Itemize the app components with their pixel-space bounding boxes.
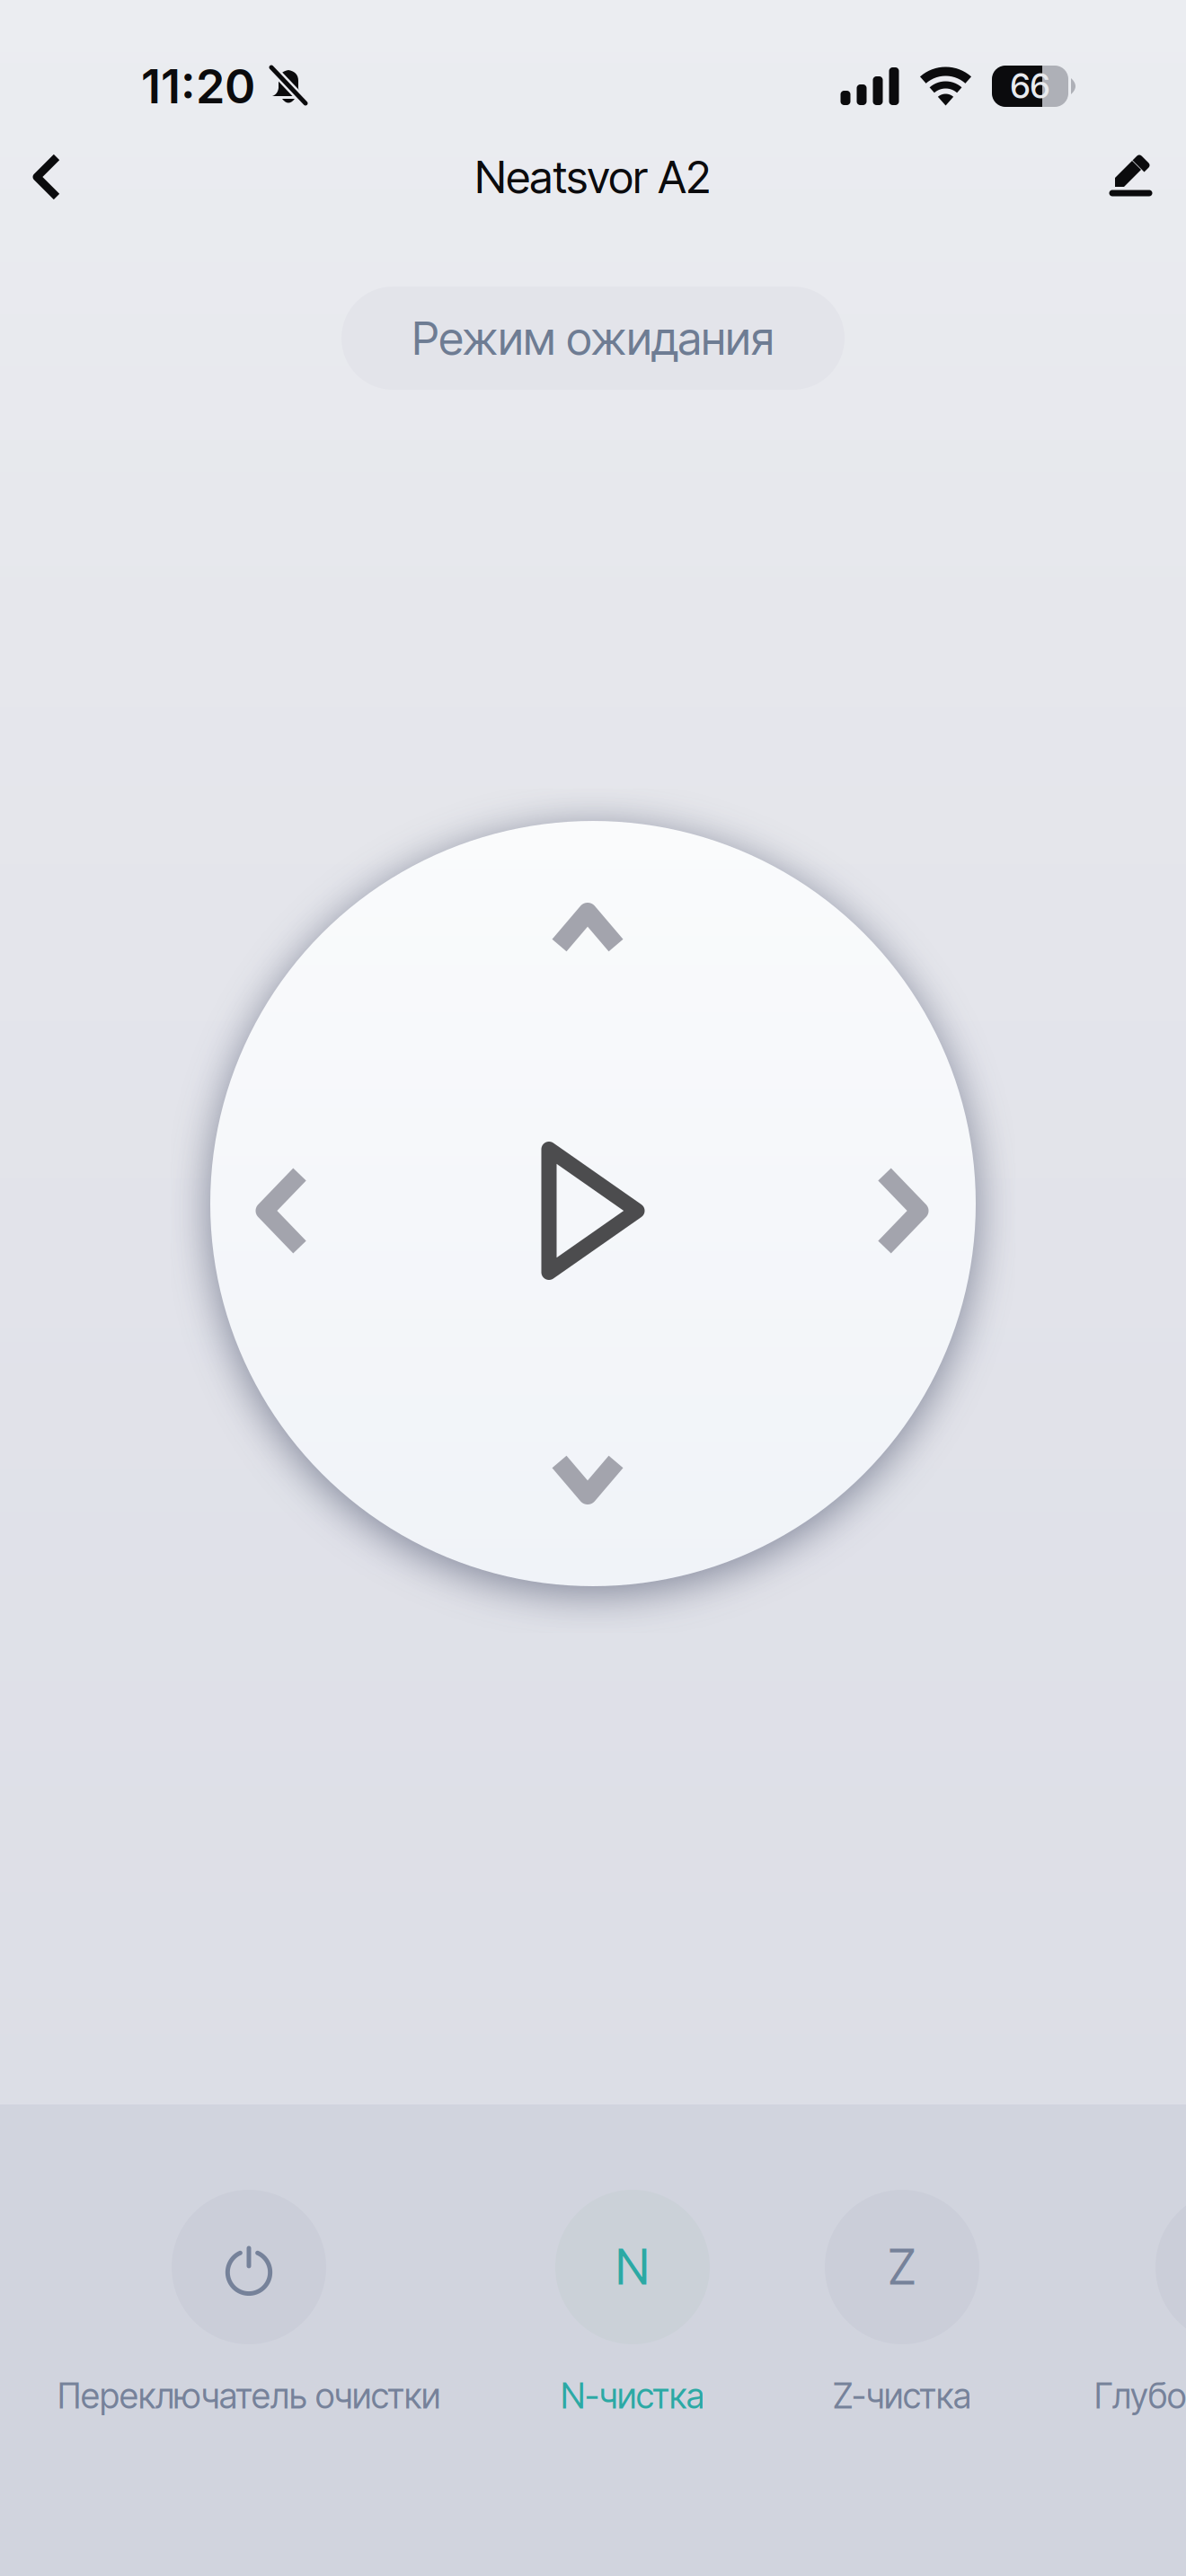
button[interactable]: Edit (1087, 130, 1181, 224)
staticText: Neatsvor A2 (475, 150, 711, 204)
button[interactable]: N (555, 2190, 710, 2417)
staticText: 11:20 (141, 58, 255, 114)
button[interactable]: Turn right (826, 1134, 978, 1287)
button[interactable]: Move forward (511, 852, 664, 1005)
staticText: N (615, 2238, 650, 2296)
button[interactable]: Turn left (206, 1134, 358, 1287)
button[interactable]: D (1094, 2190, 1186, 2417)
button[interactable]: Z (825, 2190, 979, 2417)
staticText: 66 (1010, 66, 1050, 107)
button[interactable]: Back (0, 130, 93, 224)
button[interactable]: Режим ожидания (341, 287, 845, 390)
button[interactable]: Move backward (511, 1402, 664, 1555)
button[interactable]: Start cleaning (476, 1094, 710, 1328)
staticText: Z-чистка (833, 2375, 971, 2417)
button[interactable]: Переключатель очистки (58, 2190, 440, 2417)
staticText: N-чистка (561, 2375, 704, 2417)
staticText: Глубокая очистка (1094, 2375, 1186, 2417)
staticText: Переключатель очистки (58, 2375, 440, 2417)
staticText: Z (888, 2238, 916, 2296)
staticText: Режим ожидания (412, 311, 774, 366)
